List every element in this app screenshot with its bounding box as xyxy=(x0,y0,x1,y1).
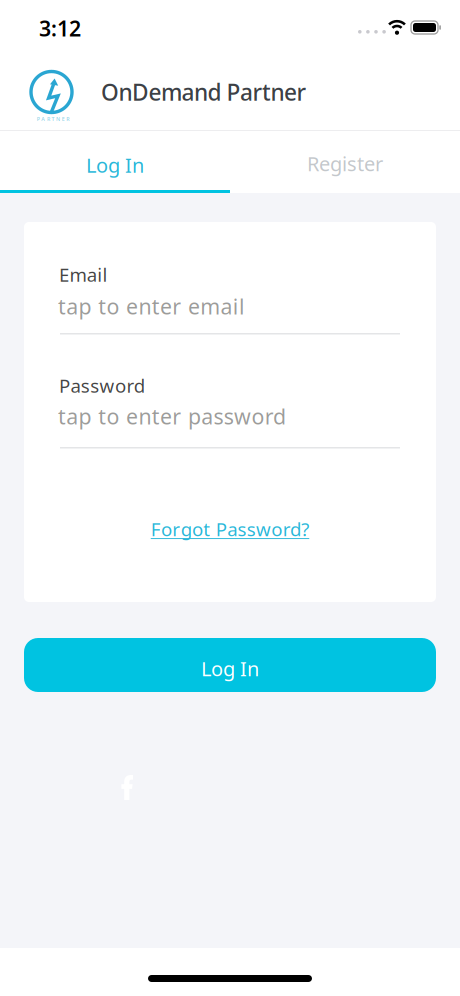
staticText: 3:12 xyxy=(39,14,81,42)
staticText: PARTNER xyxy=(37,115,69,123)
button[interactable]: tap to enter email xyxy=(58,296,400,336)
staticText: Log In xyxy=(201,655,259,682)
staticText: tap to enter password xyxy=(58,402,286,430)
staticText: Register xyxy=(307,150,383,177)
button[interactable]: Register xyxy=(230,131,460,190)
button[interactable]: Log In xyxy=(24,638,436,692)
staticText: OnDemand Partner xyxy=(101,77,306,107)
staticText: Email xyxy=(59,262,108,287)
button[interactable]: Log In xyxy=(0,131,230,193)
staticText: Forgot Password? xyxy=(151,517,309,541)
staticText: Password xyxy=(59,373,145,398)
button[interactable]: Forgot Password? xyxy=(24,514,436,544)
staticText: tap to enter email xyxy=(58,292,245,320)
button[interactable]: Log in with Facebook xyxy=(120,775,133,800)
button[interactable]: tap to enter password xyxy=(58,406,400,450)
staticText: Log In xyxy=(86,152,144,178)
